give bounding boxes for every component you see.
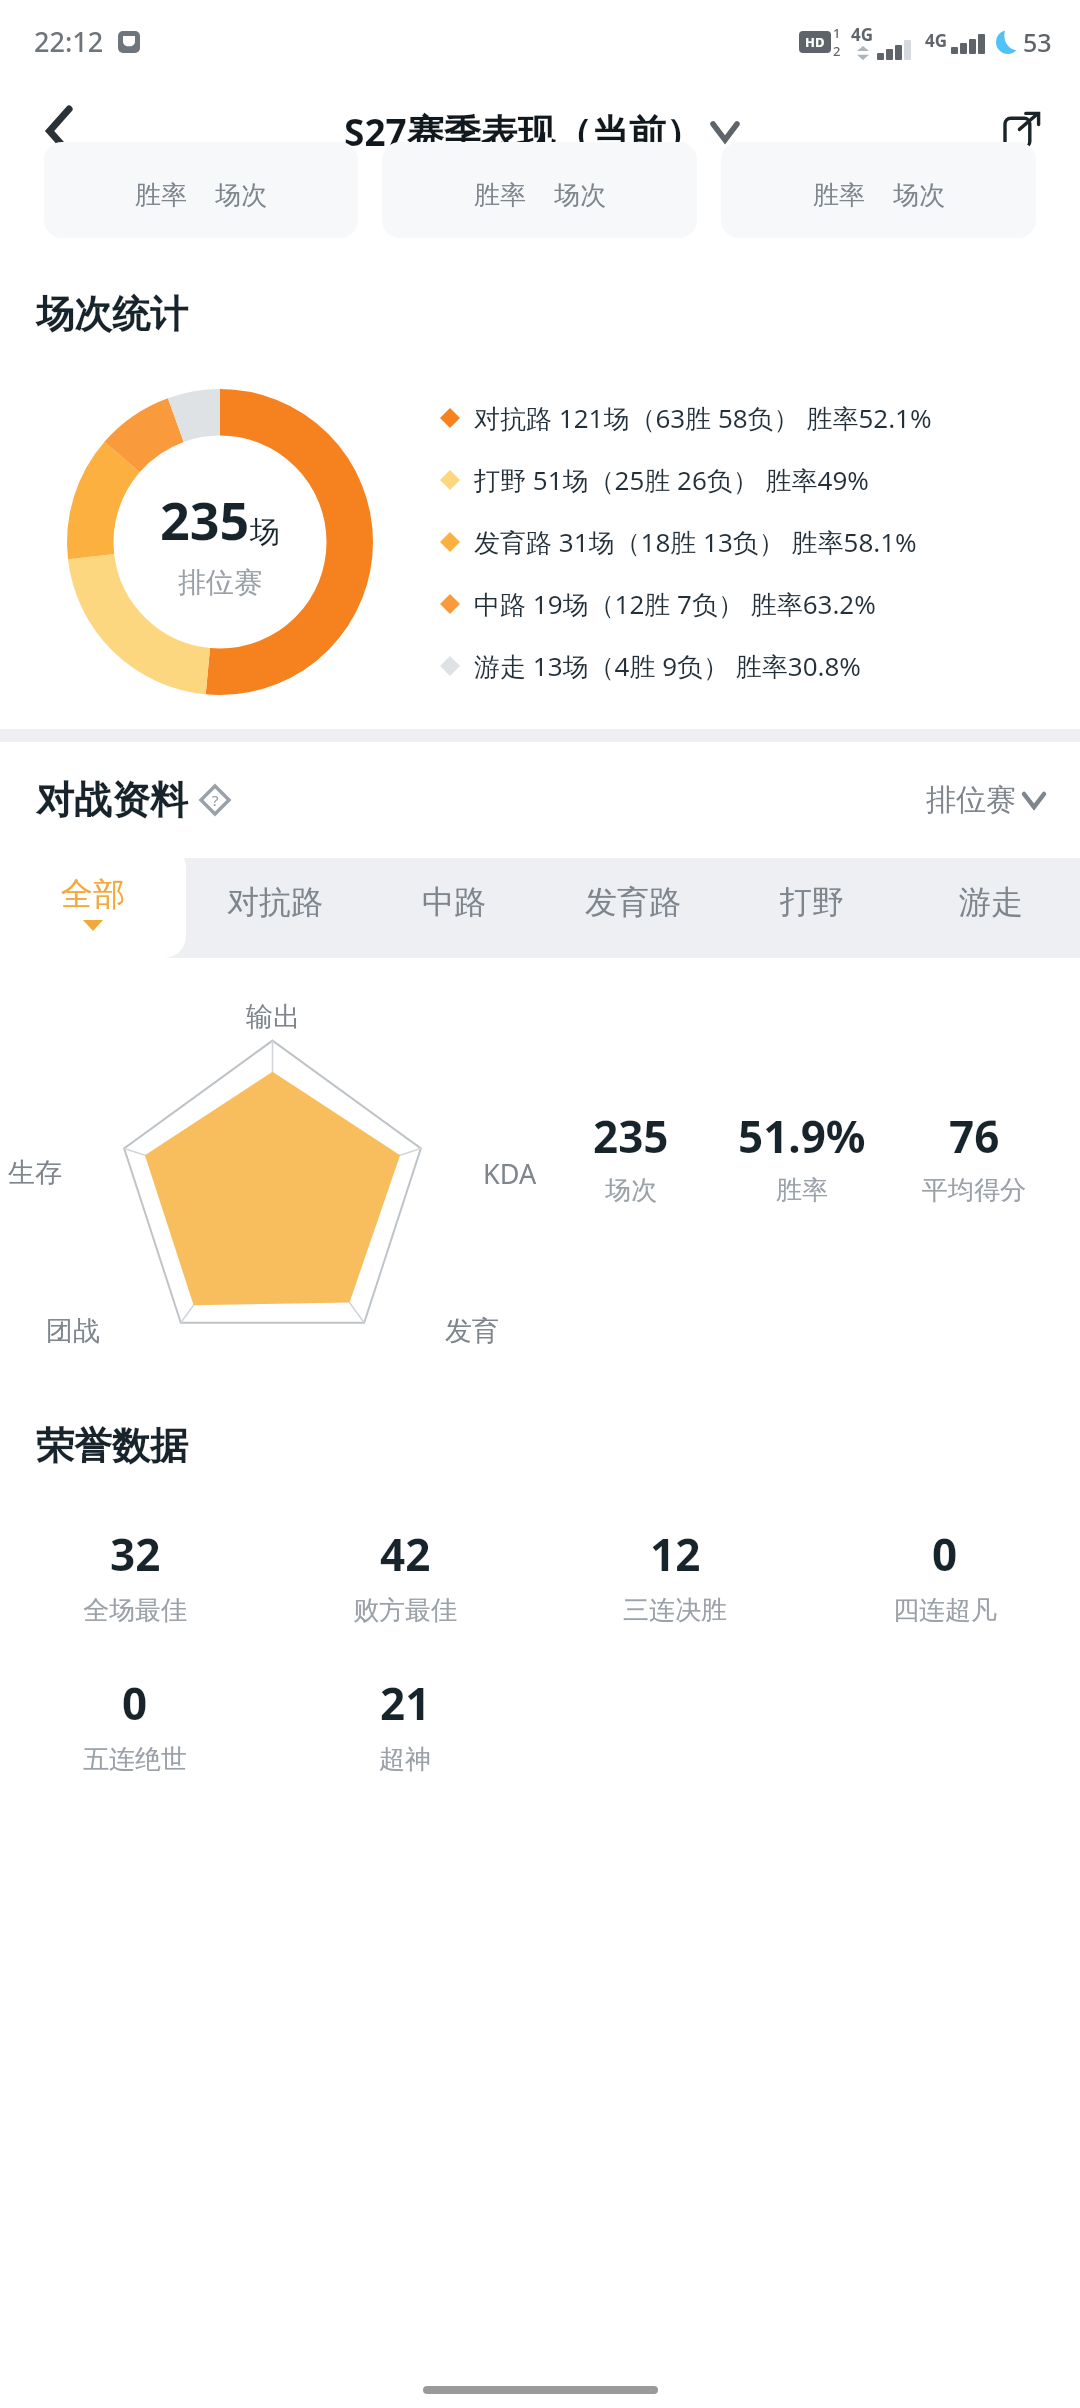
staticText: 打野 51场（25胜 26负） 胜率49% (474, 462, 869, 498)
staticText: 1 (833, 24, 841, 42)
staticText: 53 (1023, 25, 1052, 59)
staticText: 排位赛 (178, 565, 262, 600)
staticText: 4G (925, 29, 948, 52)
staticText: 场次统计 (36, 290, 188, 338)
button[interactable]: 发育路 (543, 846, 722, 958)
button[interactable]: Help (198, 783, 232, 817)
staticText: 场次 (554, 179, 606, 212)
staticText: 51.9% (738, 1106, 866, 1166)
staticText: 打野 (780, 882, 844, 922)
staticText: 发育路 (585, 882, 681, 922)
staticText: 2 (833, 42, 841, 60)
button[interactable]: Back (30, 101, 90, 161)
button[interactable]: 胜率 (382, 142, 697, 238)
button[interactable]: 中路 (364, 846, 543, 958)
staticText: 场 (250, 513, 280, 551)
staticText: 发育 (445, 1314, 499, 1348)
staticText: 团战 (46, 1314, 100, 1348)
staticText: 4G (851, 23, 874, 46)
staticText: 输出 (246, 1000, 300, 1034)
staticText: 32 (110, 1524, 161, 1584)
button[interactable]: 胜率 (721, 142, 1036, 238)
staticText: 场次 (893, 179, 945, 212)
staticText: 42 (380, 1524, 431, 1584)
staticText: 中路 19场（12胜 7负） 胜率63.2% (474, 586, 876, 622)
staticText: ? (212, 790, 219, 810)
staticText: 对抗路 (227, 882, 323, 922)
staticText: HD (805, 33, 825, 51)
button[interactable]: 全部 (0, 846, 186, 958)
button[interactable]: 对抗路 (186, 846, 364, 958)
staticText: KDA (483, 1155, 537, 1192)
staticText: 平均得分 (922, 1174, 1026, 1207)
staticText: 三连决胜 (623, 1594, 727, 1627)
staticText: 235 (593, 1106, 669, 1166)
staticText: 中路 (422, 882, 486, 922)
staticText: 12 (650, 1524, 701, 1584)
staticText: 荣誉数据 (36, 1422, 188, 1470)
staticText: 场次 (605, 1174, 657, 1207)
staticText: 排位赛 (926, 781, 1016, 819)
staticText: 21 (380, 1673, 431, 1733)
staticText: 0 (122, 1673, 148, 1733)
staticText: 0 (932, 1524, 958, 1584)
staticText: 场次 (215, 179, 267, 212)
staticText: 败方最佳 (353, 1594, 457, 1627)
staticText: 76 (949, 1106, 1000, 1166)
button[interactable]: 胜率 (44, 142, 358, 238)
staticText: 五连绝世 (83, 1743, 187, 1776)
staticText: 胜率 (135, 179, 187, 212)
staticText: 生存 (8, 1156, 62, 1190)
staticText: 全场最佳 (83, 1594, 187, 1627)
button[interactable]: 游走 (901, 846, 1080, 958)
staticText: 超神 (379, 1743, 431, 1776)
button[interactable]: 排位赛 (926, 781, 1044, 819)
staticText: 胜率 (813, 179, 865, 212)
button[interactable]: Share (990, 100, 1052, 162)
staticText: 全部 (61, 874, 125, 914)
staticText: 22:12 (34, 23, 104, 60)
staticText: 发育路 31场（18胜 13负） 胜率58.1% (474, 524, 917, 560)
staticText: 235 (160, 484, 250, 555)
button[interactable]: S27赛季表现（当前） (344, 106, 737, 157)
staticText: 游走 (959, 882, 1023, 922)
staticText: 对战资料 (36, 776, 188, 824)
staticText: 胜率 (474, 179, 526, 212)
staticText: S27赛季表现（当前） (344, 106, 703, 157)
staticText: 四连超凡 (893, 1594, 997, 1627)
staticText: 对抗路 121场（63胜 58负） 胜率52.1% (474, 400, 932, 436)
staticText: 游走 13场（4胜 9负） 胜率30.8% (474, 648, 861, 684)
button[interactable]: 打野 (722, 846, 901, 958)
staticText: 胜率 (776, 1174, 828, 1207)
